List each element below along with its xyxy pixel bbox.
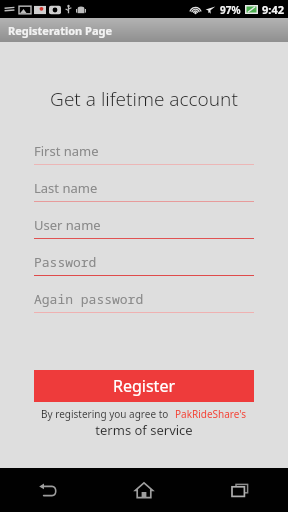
staticText: Get a lifetime account bbox=[0, 86, 288, 112]
staticText: terms of service bbox=[0, 421, 288, 439]
staticText: User name bbox=[34, 216, 101, 234]
staticText: Password bbox=[34, 253, 97, 271]
staticText: Register bbox=[113, 375, 176, 397]
button[interactable]: By registering you agree to bbox=[0, 407, 288, 421]
button[interactable]: Back bbox=[0, 468, 96, 512]
staticText: Again password bbox=[34, 290, 144, 308]
staticText: First name bbox=[34, 142, 99, 160]
button[interactable]: Again password bbox=[34, 285, 254, 322]
button[interactable]: User name bbox=[34, 211, 254, 248]
button[interactable]: Last name bbox=[34, 174, 254, 211]
button[interactable]: Recent apps bbox=[192, 468, 288, 512]
button[interactable]: Home bbox=[96, 468, 192, 512]
staticText: By registering you agree to bbox=[41, 407, 169, 421]
button[interactable]: First name bbox=[34, 137, 254, 174]
button[interactable]: Password bbox=[34, 248, 254, 285]
staticText: Last name bbox=[34, 179, 98, 197]
staticText: 97% bbox=[220, 3, 241, 17]
staticText: Registeration Page bbox=[8, 23, 113, 38]
staticText: PakRideShare's bbox=[175, 407, 247, 421]
button[interactable]: Register bbox=[34, 370, 254, 402]
staticText: 9:42 bbox=[262, 2, 284, 17]
